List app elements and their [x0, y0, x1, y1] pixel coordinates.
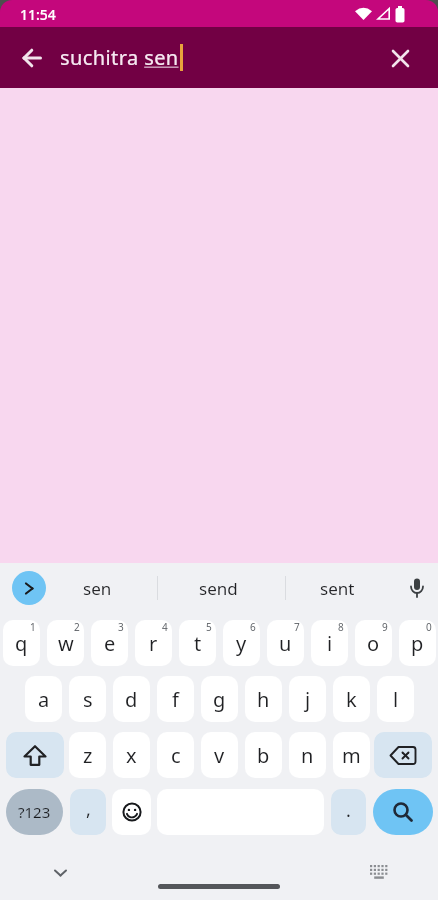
staticText: 5 [206, 620, 212, 634]
staticText: c [171, 742, 181, 769]
staticText: e [104, 630, 116, 657]
staticText: v [214, 742, 225, 769]
button[interactable]: f [157, 676, 194, 722]
button[interactable]: t [179, 620, 216, 666]
staticText: b [257, 742, 270, 769]
button[interactable] [400, 570, 434, 606]
button[interactable]: u [267, 620, 304, 666]
button[interactable]: q [3, 620, 40, 666]
staticText: . [346, 798, 351, 823]
staticText: a [38, 686, 50, 713]
button[interactable]: y [223, 620, 260, 666]
button[interactable]: w [47, 620, 84, 666]
button[interactable] [357, 856, 401, 888]
staticText: z [83, 742, 93, 769]
button[interactable] [380, 38, 420, 78]
staticText: s [83, 686, 93, 713]
button[interactable]: p [399, 620, 436, 666]
staticText: t [194, 630, 202, 657]
staticText: j [305, 686, 311, 713]
button[interactable]: ?123 [6, 789, 63, 835]
staticText: r [149, 630, 158, 657]
button[interactable]: v [201, 732, 238, 778]
button[interactable]: g [201, 676, 238, 722]
button[interactable]: s [69, 676, 106, 722]
button[interactable] [6, 732, 64, 778]
staticText: n [301, 742, 314, 769]
staticText: m [342, 742, 361, 769]
button[interactable]: j [289, 676, 326, 722]
staticText: sent [320, 577, 355, 600]
staticText: h [257, 686, 270, 713]
staticText: l [393, 686, 399, 713]
staticText: 3 [118, 620, 124, 634]
staticText: 4 [162, 620, 168, 634]
staticText: , [86, 797, 91, 822]
staticText: suchitra sen [60, 44, 179, 71]
staticText: g [213, 686, 226, 713]
button[interactable]: z [69, 732, 106, 778]
button[interactable]: a [25, 676, 62, 722]
button[interactable] [112, 789, 151, 835]
button[interactable]: . [331, 789, 366, 835]
button[interactable] [12, 571, 46, 605]
button[interactable]: h [245, 676, 282, 722]
button[interactable]: m [333, 732, 370, 778]
button[interactable] [373, 789, 433, 835]
staticText: 7 [294, 620, 300, 634]
staticText: 6 [250, 620, 256, 634]
button[interactable]: d [113, 676, 150, 722]
staticText: send [199, 577, 238, 600]
staticText: x [126, 742, 137, 769]
staticText: p [411, 630, 424, 657]
staticText: d [125, 686, 138, 713]
button[interactable] [374, 732, 432, 778]
button[interactable]: k [333, 676, 370, 722]
button[interactable]: e [91, 620, 128, 666]
staticText: 8 [338, 620, 344, 634]
button[interactable] [12, 38, 52, 78]
staticText: 0 [426, 620, 432, 634]
button[interactable]: o [355, 620, 392, 666]
button[interactable]: n [289, 732, 326, 778]
staticText: q [15, 630, 28, 657]
staticText: i [327, 630, 333, 657]
button[interactable]: , [70, 789, 106, 835]
button[interactable]: x [113, 732, 150, 778]
button[interactable]: r [135, 620, 172, 666]
staticText: f [172, 686, 179, 713]
button[interactable]: l [377, 676, 414, 722]
button[interactable]: sen [62, 563, 132, 613]
staticText: w [58, 630, 74, 657]
staticText: sen [83, 577, 112, 600]
staticText: ?123 [18, 802, 51, 822]
button[interactable] [38, 858, 82, 888]
button[interactable]: sent [302, 563, 372, 613]
staticText: k [346, 686, 357, 713]
button[interactable]: send [183, 563, 253, 613]
button[interactable]: i [311, 620, 348, 666]
staticText: 11:54 [20, 5, 56, 24]
staticText: u [279, 630, 292, 657]
button[interactable]: c [157, 732, 194, 778]
button[interactable]: b [245, 732, 282, 778]
staticText: 2 [74, 620, 80, 634]
staticText: 9 [382, 620, 388, 634]
staticText: y [236, 630, 247, 657]
staticText: 1 [30, 620, 36, 634]
staticText: o [367, 630, 380, 657]
